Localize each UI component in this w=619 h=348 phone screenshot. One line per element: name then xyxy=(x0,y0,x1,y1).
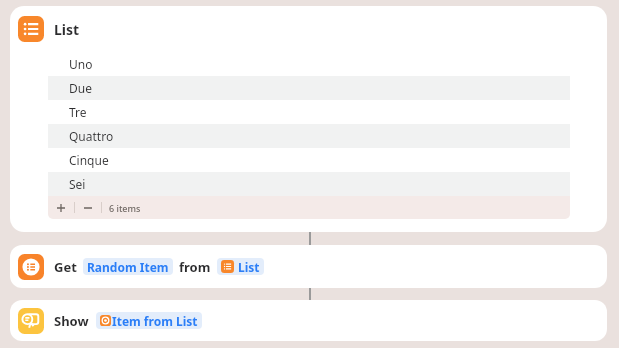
button[interactable]: Show xyxy=(10,300,607,341)
staticText: Cinque xyxy=(69,152,109,168)
staticText: Random Item xyxy=(87,259,169,275)
button[interactable]: Remove item xyxy=(75,196,101,219)
button[interactable]: Tre xyxy=(48,100,570,124)
staticText: Tre xyxy=(69,104,87,120)
staticText: Item from List xyxy=(112,313,198,329)
button[interactable]: Add item xyxy=(48,196,74,219)
staticText: Sei xyxy=(69,176,86,192)
button[interactable]: Due xyxy=(48,76,570,100)
button[interactable]: Uno xyxy=(48,52,570,76)
button[interactable]: Quattro xyxy=(48,124,570,148)
button[interactable]: Random Item xyxy=(83,258,173,275)
button[interactable]: Sei xyxy=(48,172,570,196)
staticText: Get xyxy=(54,258,77,276)
staticText: from xyxy=(179,258,211,276)
button[interactable]: Item from List xyxy=(96,312,202,329)
button[interactable]: List xyxy=(217,258,264,275)
staticText: 6 items xyxy=(109,202,141,214)
button[interactable]: List xyxy=(10,6,607,232)
staticText: List xyxy=(54,20,80,39)
button[interactable]: Cinque xyxy=(48,148,570,172)
staticText: Show xyxy=(54,312,89,330)
staticText: Due xyxy=(69,80,92,96)
staticText: List xyxy=(238,259,260,275)
staticText: Uno xyxy=(69,56,93,72)
button[interactable]: Get xyxy=(10,245,607,288)
staticText: Quattro xyxy=(69,128,114,144)
